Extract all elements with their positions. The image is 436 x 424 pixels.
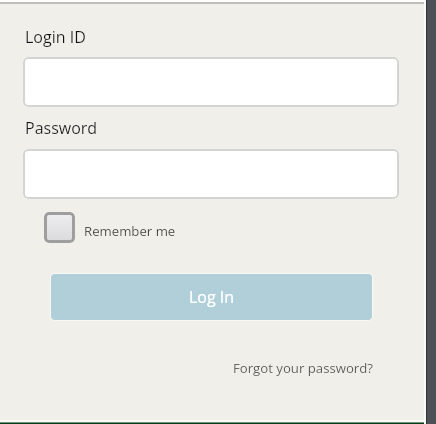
staticText: Forgot your password? xyxy=(232,359,373,377)
button[interactable]: Login ID xyxy=(23,57,399,107)
button[interactable]: Forgot your password? xyxy=(213,357,373,379)
staticText: Log In xyxy=(189,286,235,308)
staticText: Remember me xyxy=(84,222,176,240)
button[interactable]: Log In xyxy=(51,274,372,320)
button[interactable]: Remember me xyxy=(44,211,176,244)
staticText: Login ID xyxy=(25,26,86,48)
staticText: Password xyxy=(25,117,98,139)
button[interactable]: Password xyxy=(23,149,399,199)
